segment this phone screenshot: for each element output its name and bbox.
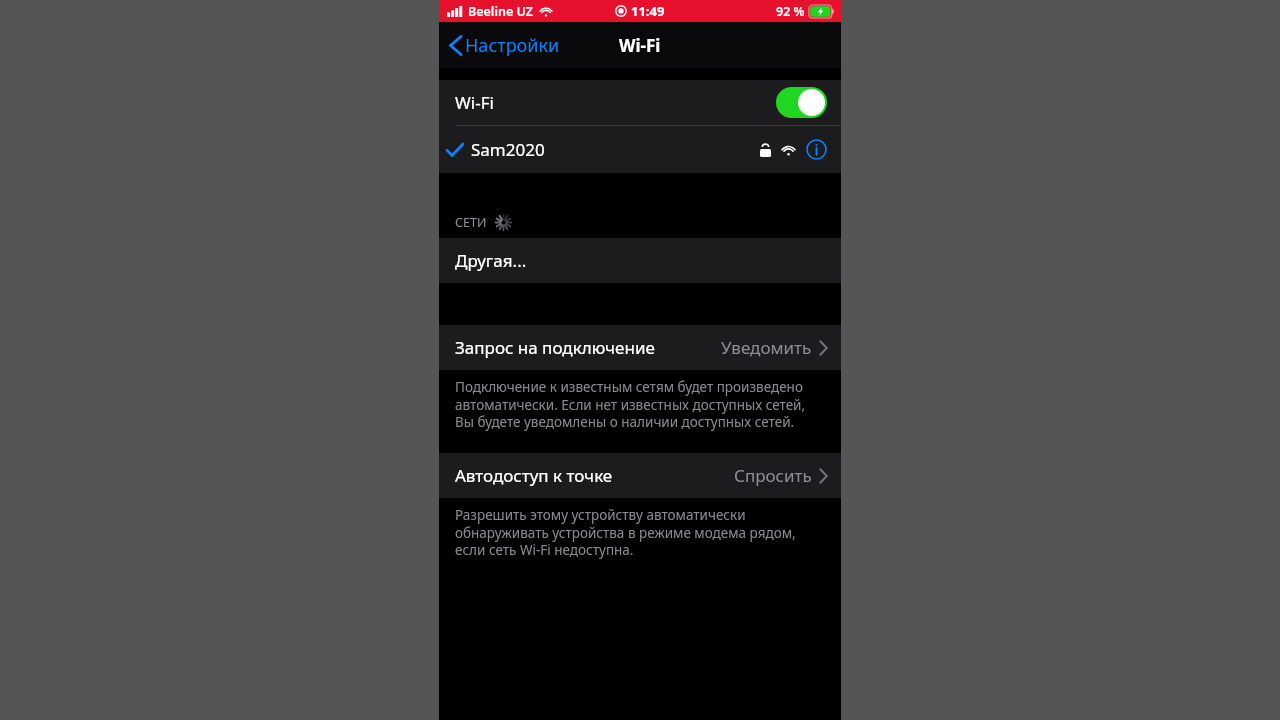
staticText: 11:49 [631,2,665,20]
button[interactable]: Автодоступ к точке [439,453,841,498]
button[interactable]: Network info [806,139,827,160]
staticText: СЕТИ [455,214,487,231]
staticText: Уведомить [721,336,812,359]
button[interactable]: Wi-Fi toggle, on [776,87,827,118]
staticText: Wi-Fi [455,91,494,114]
button[interactable]: Wi-Fi [439,80,841,125]
staticText: Другая... [455,249,527,272]
staticText: Автодоступ к точке [455,464,613,487]
staticText: Подключение к известным сетям будет прои… [455,378,806,431]
staticText: 92 % [776,3,805,20]
staticText: Запрос на подключение [455,336,655,359]
staticText: Beeline UZ [468,3,534,20]
staticText: Настройки [465,33,560,58]
staticText: Спросить [734,464,812,487]
button[interactable]: Настройки [449,33,560,58]
button[interactable]: Запрос на подключение [439,325,841,370]
staticText: Разрешить этому устройству автоматически… [455,506,796,559]
button[interactable]: Другая... [439,238,841,283]
staticText: Sam2020 [471,138,545,161]
button[interactable]: Sam2020 [439,126,841,173]
staticText: Wi-Fi [619,34,661,57]
